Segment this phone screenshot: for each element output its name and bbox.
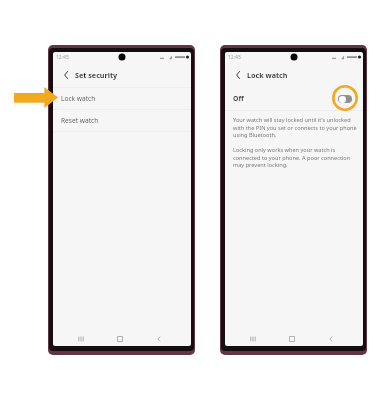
button[interactable]: Off bbox=[225, 87, 363, 110]
staticText: 12:45 bbox=[56, 54, 69, 61]
button[interactable]: Home bbox=[100, 331, 139, 346]
staticText: Set security bbox=[75, 70, 118, 80]
staticText: Locking only works when your watch is co… bbox=[233, 146, 351, 168]
button[interactable]: Home bbox=[272, 331, 311, 346]
button[interactable]: Reset watch bbox=[53, 110, 191, 131]
staticText: Lock watch bbox=[61, 94, 96, 103]
staticText: Lock watch bbox=[247, 70, 288, 80]
button[interactable]: Navigate up bbox=[232, 69, 243, 80]
staticText: Your watch will stay locked until it's u… bbox=[233, 116, 360, 138]
staticText: Off bbox=[233, 94, 244, 103]
button[interactable]: Back bbox=[139, 331, 178, 346]
button[interactable]: Lock watch bbox=[53, 88, 191, 109]
staticText: 12:45 bbox=[228, 54, 241, 61]
button[interactable]: Back bbox=[311, 331, 350, 346]
staticText: Reset watch bbox=[61, 116, 99, 125]
button[interactable]: Navigate up bbox=[60, 69, 71, 80]
button[interactable]: Recent apps bbox=[62, 331, 100, 346]
button[interactable]: Recent apps bbox=[234, 331, 272, 346]
